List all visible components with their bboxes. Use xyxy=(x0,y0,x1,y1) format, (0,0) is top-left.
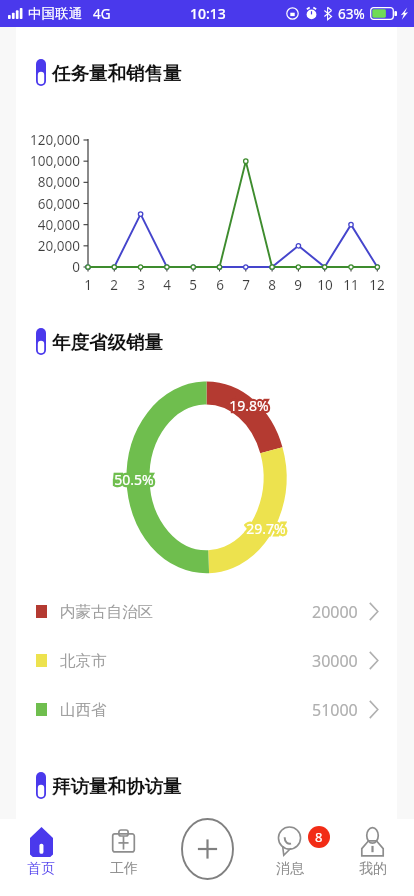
staticText: 4G xyxy=(93,5,111,23)
button[interactable]: 首页 xyxy=(0,819,82,896)
staticText: 7 xyxy=(233,276,259,294)
staticText: 40,000 xyxy=(16,216,80,234)
button[interactable]: 北京市 xyxy=(16,636,397,685)
staticText: 1 xyxy=(75,276,101,294)
staticText: 80,000 xyxy=(16,173,80,191)
staticText: 首页 xyxy=(27,860,55,878)
staticText: 中国联通 xyxy=(28,5,82,22)
staticText: 51000 xyxy=(312,699,358,721)
staticText: 100,000 xyxy=(16,152,80,170)
staticText: 工作 xyxy=(110,860,138,878)
staticText: 任务量和销售量 xyxy=(52,62,182,85)
staticText: 30000 xyxy=(312,650,358,672)
button[interactable]: 山西省 xyxy=(16,685,397,734)
staticText: 5 xyxy=(180,276,206,294)
staticText: 10:13 xyxy=(190,4,226,23)
staticText: 120,000 xyxy=(16,131,80,149)
button[interactable]: 8 xyxy=(248,819,331,896)
staticText: 60,000 xyxy=(16,195,80,213)
staticText: 0 xyxy=(16,258,80,276)
staticText: 12 xyxy=(364,276,390,294)
staticText: 3 xyxy=(128,276,154,294)
staticText: 19.8% xyxy=(229,396,269,415)
button[interactable]: 工作 xyxy=(82,819,165,896)
staticText: 年度省级销量 xyxy=(52,331,163,354)
staticText: 9 xyxy=(285,276,311,294)
staticText: 50.5% xyxy=(114,470,154,489)
button[interactable]: 任务量和销售量 xyxy=(36,59,182,86)
staticText: 拜访量和协访量 xyxy=(52,775,182,798)
button[interactable]: 年度省级销量 xyxy=(36,328,163,355)
staticText: 11 xyxy=(338,276,364,294)
staticText: 10 xyxy=(312,276,338,294)
staticText: 6 xyxy=(207,276,233,294)
staticText: 29.7% xyxy=(246,519,286,538)
staticText: 消息 xyxy=(276,860,304,878)
staticText: 19.8% xyxy=(229,396,269,415)
staticText: 20000 xyxy=(312,601,358,623)
button[interactable]: 拜访量和协访量 xyxy=(36,772,182,799)
button[interactable]: 我的 xyxy=(331,819,414,896)
staticText: 8 xyxy=(315,828,323,846)
staticText: 4 xyxy=(154,276,180,294)
staticText: 50.5% xyxy=(114,470,154,489)
staticText: 2 xyxy=(101,276,127,294)
staticText: 8 xyxy=(259,276,285,294)
staticText: 山西省 xyxy=(60,700,107,720)
button[interactable]: Add xyxy=(181,818,234,880)
staticText: 63% xyxy=(338,5,365,23)
staticText: 我的 xyxy=(359,860,387,878)
staticText: 北京市 xyxy=(60,651,107,671)
staticText: 29.7% xyxy=(246,519,286,538)
button[interactable]: 内蒙古自治区 xyxy=(16,587,397,636)
staticText: 20,000 xyxy=(16,237,80,255)
staticText: 内蒙古自治区 xyxy=(60,602,153,622)
